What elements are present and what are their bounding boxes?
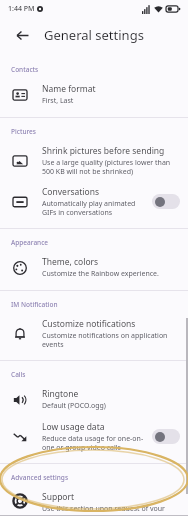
button[interactable]: Shrink pictures before sending xyxy=(0,140,188,181)
button[interactable]: Low usage data xyxy=(0,416,188,457)
staticText: General settings xyxy=(44,26,144,44)
button[interactable]: Back xyxy=(10,23,34,47)
staticText: Conversations xyxy=(42,186,99,198)
staticText: Automatically play animated GIFs in conv… xyxy=(42,199,146,217)
staticText: Use this section upon request of your sy… xyxy=(42,504,180,511)
staticText: Ringtone xyxy=(42,388,79,400)
button[interactable]: Theme, colors xyxy=(0,251,188,284)
button[interactable]: Toggle xyxy=(152,429,180,444)
staticText: Advanced settings xyxy=(11,473,69,482)
button[interactable]: Name format xyxy=(0,78,188,111)
staticText: Default (POCO.ogg) xyxy=(42,401,106,411)
staticText: Appearance xyxy=(11,238,49,247)
staticText: Use a large quality (pictures lower than… xyxy=(42,158,180,176)
staticText: Theme, colors xyxy=(42,256,99,268)
button[interactable]: Conversations xyxy=(0,181,188,222)
staticText: Customize the Rainbow experience. xyxy=(42,269,159,279)
staticText: Name format xyxy=(42,83,96,95)
staticText: Customize notifications on application e… xyxy=(42,331,180,349)
button[interactable]: Support xyxy=(0,486,188,516)
staticText: 1:44 PM xyxy=(8,4,35,14)
staticText: Support xyxy=(42,491,75,503)
staticText: IM Notification xyxy=(11,300,58,309)
staticText: First, Last xyxy=(42,96,74,106)
button[interactable]: Ringtone xyxy=(0,383,188,416)
staticText: Calls xyxy=(11,370,26,379)
staticText: Pictures xyxy=(11,127,36,136)
button[interactable]: Customize notifications xyxy=(0,313,188,354)
button[interactable]: Toggle xyxy=(152,194,180,209)
staticText: Contacts xyxy=(11,65,39,74)
staticText: Low usage data xyxy=(42,421,105,433)
staticText: Shrink pictures before sending xyxy=(42,145,165,157)
staticText: Customize notifications xyxy=(42,318,136,330)
staticText: Reduce data usage for one-on-one or grou… xyxy=(42,434,146,452)
